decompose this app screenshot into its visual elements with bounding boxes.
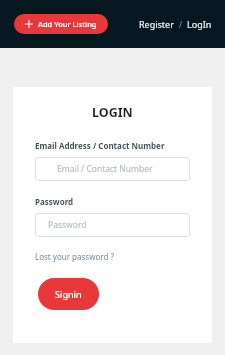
staticText: Register [139, 18, 174, 30]
button[interactable]: Add Your Listing [14, 14, 108, 34]
staticText: Signin [55, 288, 82, 300]
staticText: Add Your Listing [38, 19, 97, 29]
button[interactable]: LogIn [185, 15, 214, 33]
button[interactable]: Email / Contact Number [35, 157, 190, 181]
staticText: LogIn [187, 18, 212, 30]
staticText: Email Address / Contact Number [35, 140, 165, 151]
staticText: Lost your password ? [35, 251, 114, 262]
button[interactable]: Password [35, 213, 190, 237]
button[interactable]: Lost your password ? [35, 249, 114, 264]
staticText: Email / Contact Number [57, 163, 153, 175]
button[interactable]: Register [137, 15, 176, 33]
staticText: Password [35, 196, 74, 207]
button[interactable]: Signin [38, 278, 99, 310]
staticText: LOGIN [92, 104, 133, 121]
staticText: / [179, 19, 182, 30]
staticText: Password [48, 219, 87, 231]
